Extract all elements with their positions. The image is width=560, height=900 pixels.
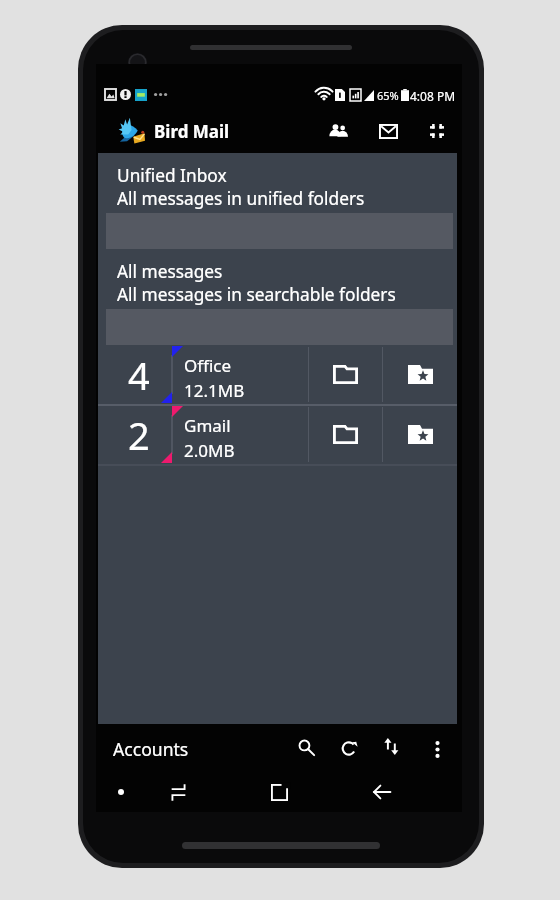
button[interactable]: Accounts: [320, 113, 356, 149]
staticText: Unified Inbox: [117, 164, 227, 188]
staticText: All messages: [117, 260, 223, 284]
button[interactable]: Folders: [309, 405, 382, 464]
button[interactable]: Mail: [370, 113, 406, 149]
staticText: 4: [128, 349, 150, 401]
button[interactable]: Folders: [309, 345, 382, 404]
button[interactable]: Sort: [373, 728, 409, 764]
staticText: All messages in searchable folders: [117, 283, 396, 307]
button[interactable]: Back: [360, 772, 404, 812]
staticText: Accounts: [113, 737, 189, 761]
staticText: 65%: [377, 88, 399, 103]
staticText: Bird Mail: [154, 120, 230, 143]
button[interactable]: All messages: [98, 249, 457, 345]
button[interactable]: Starred folders: [383, 345, 457, 404]
button[interactable]: Refresh: [331, 730, 367, 766]
button[interactable]: Assistant: [99, 772, 143, 812]
staticText: 12.1MB: [184, 379, 245, 402]
staticText: 4:08 PM: [410, 88, 456, 104]
staticText: Office: [184, 354, 232, 377]
staticText: All messages in unified folders: [117, 187, 365, 211]
staticText: Gmail: [184, 414, 231, 437]
button[interactable]: Switch apps: [156, 772, 200, 812]
button[interactable]: Search: [288, 729, 324, 765]
button[interactable]: Starred folders: [383, 405, 457, 464]
staticText: 2: [128, 409, 150, 461]
button[interactable]: Unified Inbox: [98, 153, 457, 249]
button[interactable]: More options: [419, 731, 455, 767]
button[interactable]: 4: [98, 345, 457, 404]
button[interactable]: Recents: [257, 772, 301, 812]
button[interactable]: 2: [98, 405, 457, 464]
staticText: 2.0MB: [184, 439, 235, 462]
button[interactable]: Collapse: [419, 113, 455, 149]
